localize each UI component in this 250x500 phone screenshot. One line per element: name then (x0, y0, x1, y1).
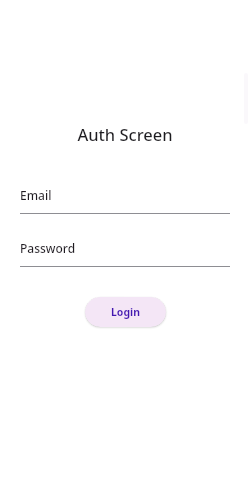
staticText: Login (111, 305, 141, 319)
staticText: Password (20, 240, 76, 256)
button[interactable]: Password (20, 240, 230, 267)
staticText: Email (20, 187, 52, 203)
button[interactable]: Email (20, 187, 230, 214)
staticText: Auth Screen (77, 123, 173, 145)
button[interactable]: Login (85, 297, 166, 327)
